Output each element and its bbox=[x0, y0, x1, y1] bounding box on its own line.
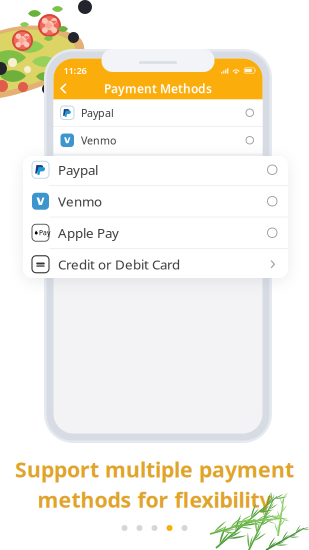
staticText: methods for flexibility bbox=[37, 485, 271, 514]
staticText: Pay bbox=[39, 228, 49, 237]
staticText: Paypal bbox=[58, 161, 98, 179]
button[interactable]: Venmo bbox=[23, 186, 288, 216]
staticText: Apple Pay bbox=[58, 224, 119, 242]
staticText: Payment Methods bbox=[104, 80, 212, 96]
staticText: Support multiple payment bbox=[15, 455, 294, 483]
staticText: Credit or Debit Card bbox=[58, 255, 180, 273]
button[interactable]: Back bbox=[53, 78, 74, 99]
staticText: Paypal bbox=[81, 106, 114, 120]
staticText: Venmo bbox=[81, 133, 116, 147]
button[interactable]: Paypal bbox=[23, 154, 288, 185]
staticText: Venmo bbox=[58, 192, 102, 210]
button[interactable]: Pay bbox=[23, 217, 288, 248]
staticText: 11:26 bbox=[63, 64, 86, 77]
button[interactable]: Credit or Debit Card bbox=[23, 249, 288, 279]
